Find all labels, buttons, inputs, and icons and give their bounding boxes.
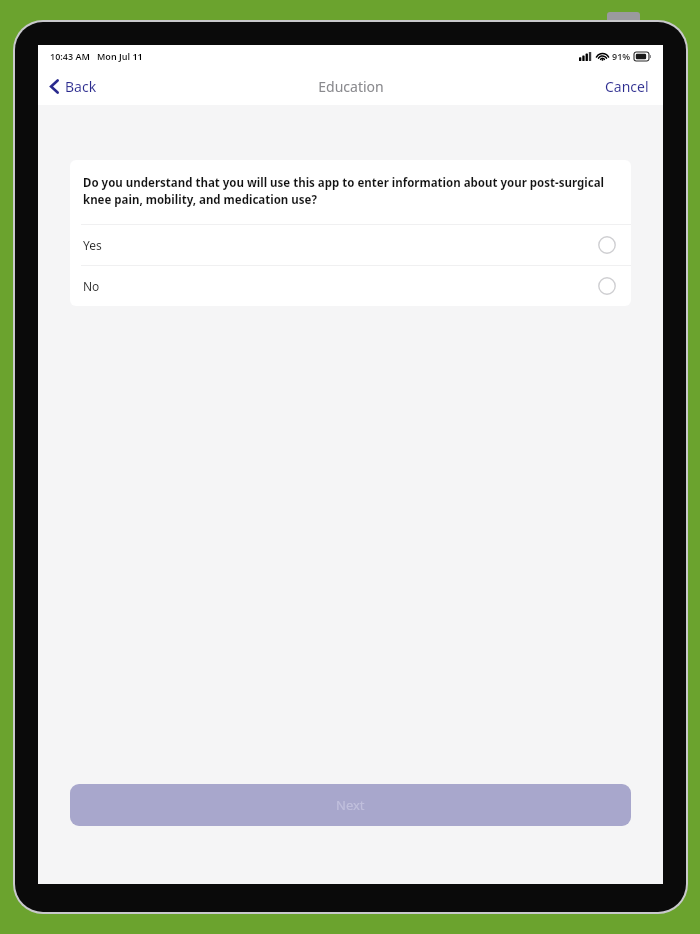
button[interactable]: Back [44, 73, 103, 100]
staticText: Education [318, 77, 384, 96]
staticText: Do you understand that you will use this… [83, 175, 618, 208]
staticText: Cancel [605, 77, 649, 96]
staticText: Yes [83, 237, 102, 253]
other: Select Yes [598, 236, 616, 254]
button[interactable]: Next [70, 784, 631, 826]
staticText: Back [65, 77, 97, 96]
button[interactable]: Cancel [597, 73, 657, 100]
staticText: 91% [612, 50, 631, 62]
button[interactable]: Yes [70, 225, 631, 265]
button[interactable]: No [70, 266, 631, 306]
staticText: Mon Jul 11 [97, 50, 143, 62]
staticText: 10:43 AM [50, 50, 90, 62]
staticText: Next [336, 796, 365, 814]
other: Select No [598, 277, 616, 295]
staticText: No [83, 278, 100, 294]
